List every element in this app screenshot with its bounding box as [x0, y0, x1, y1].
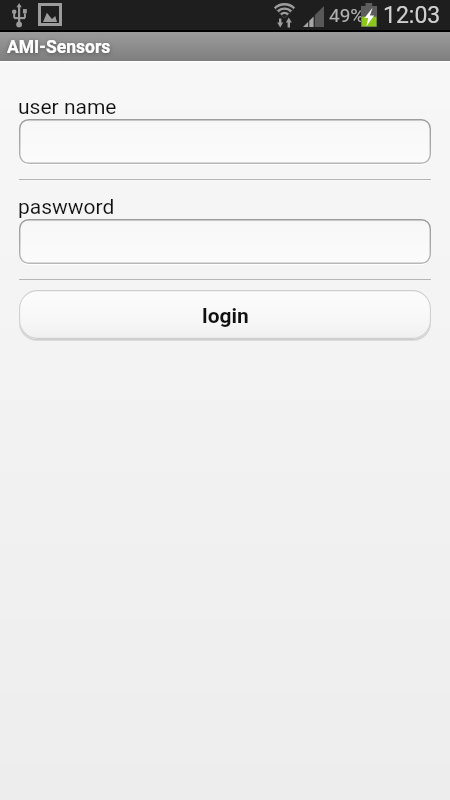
button[interactable]: login	[19, 290, 431, 339]
button[interactable]: AMI-Sensors	[0, 32, 450, 61]
staticText: login	[202, 304, 249, 329]
staticText: AMI-Sensors	[7, 37, 111, 58]
staticText: 12:03	[383, 2, 441, 29]
staticText: user name	[18, 95, 117, 120]
staticText: 49%	[329, 4, 365, 26]
staticText: paswword	[18, 195, 115, 220]
button[interactable]	[19, 119, 431, 164]
button[interactable]	[19, 219, 431, 264]
